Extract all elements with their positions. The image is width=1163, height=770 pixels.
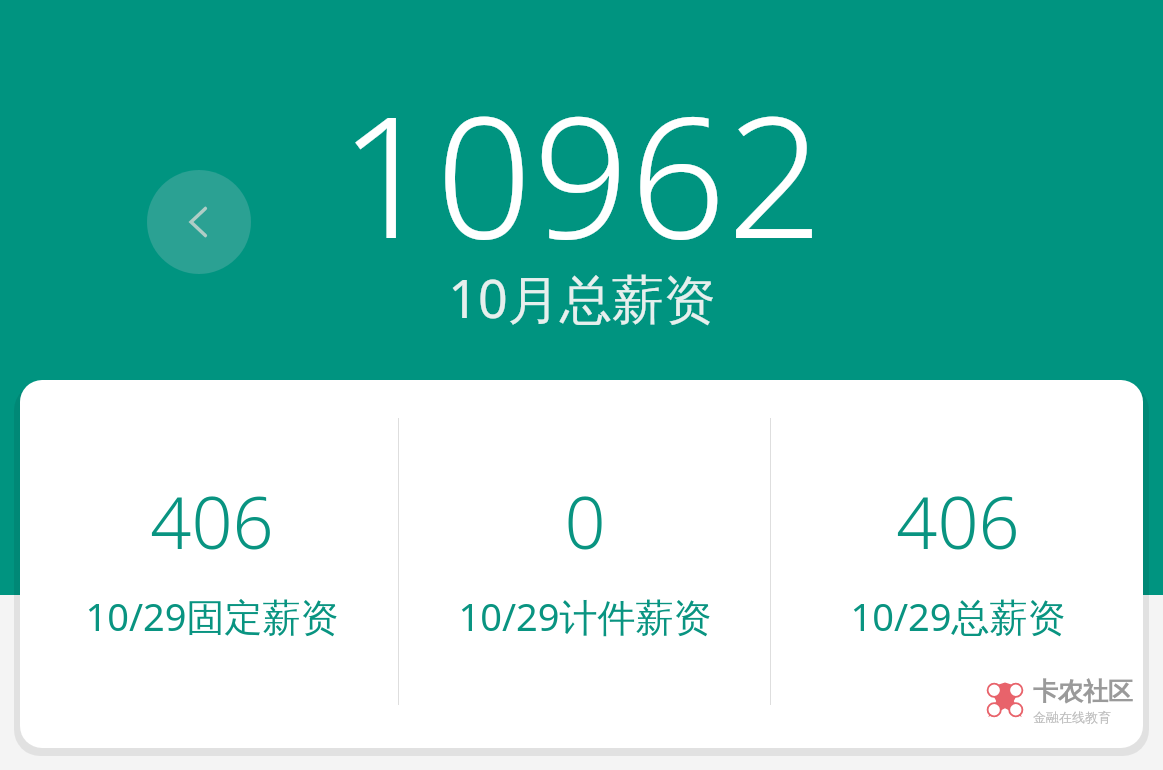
button[interactable]: 0	[410, 472, 760, 642]
staticText: 卡农社区	[1033, 676, 1133, 707]
staticText: 10/29计件薪资	[458, 590, 712, 642]
button[interactable]: 406	[37, 472, 387, 642]
staticText: 10/29固定薪资	[85, 590, 339, 642]
staticText: 0	[564, 472, 606, 570]
button[interactable]: 406	[783, 472, 1133, 642]
staticText: 10962	[339, 58, 824, 287]
staticText: 406	[896, 472, 1020, 570]
staticText: 金融在线教育	[1033, 709, 1111, 725]
staticText: 10/29总薪资	[850, 590, 1066, 642]
staticText: 406	[150, 472, 274, 570]
staticText: 10月总薪资	[448, 262, 716, 333]
button[interactable]: Back	[147, 170, 251, 274]
